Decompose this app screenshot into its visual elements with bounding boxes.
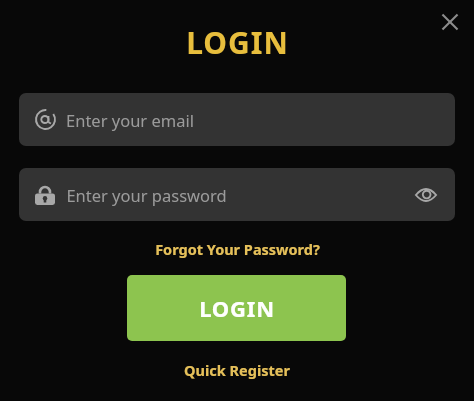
button[interactable]: Quick Register [176, 357, 298, 383]
staticText: Quick Register [184, 360, 290, 380]
button[interactable]: Show password [411, 180, 441, 210]
staticText: Enter your email [66, 109, 194, 131]
button[interactable]: Enter your email [19, 93, 455, 146]
button[interactable]: Close [433, 5, 467, 39]
button[interactable]: Enter your password [19, 168, 455, 221]
staticText: LOGIN [186, 22, 289, 63]
staticText: Forgot Your Password? [155, 239, 320, 259]
button[interactable]: Forgot Your Password? [147, 236, 328, 262]
staticText: LOGIN [199, 293, 275, 323]
button[interactable]: LOGIN [127, 275, 346, 341]
staticText: Enter your password [66, 184, 227, 206]
